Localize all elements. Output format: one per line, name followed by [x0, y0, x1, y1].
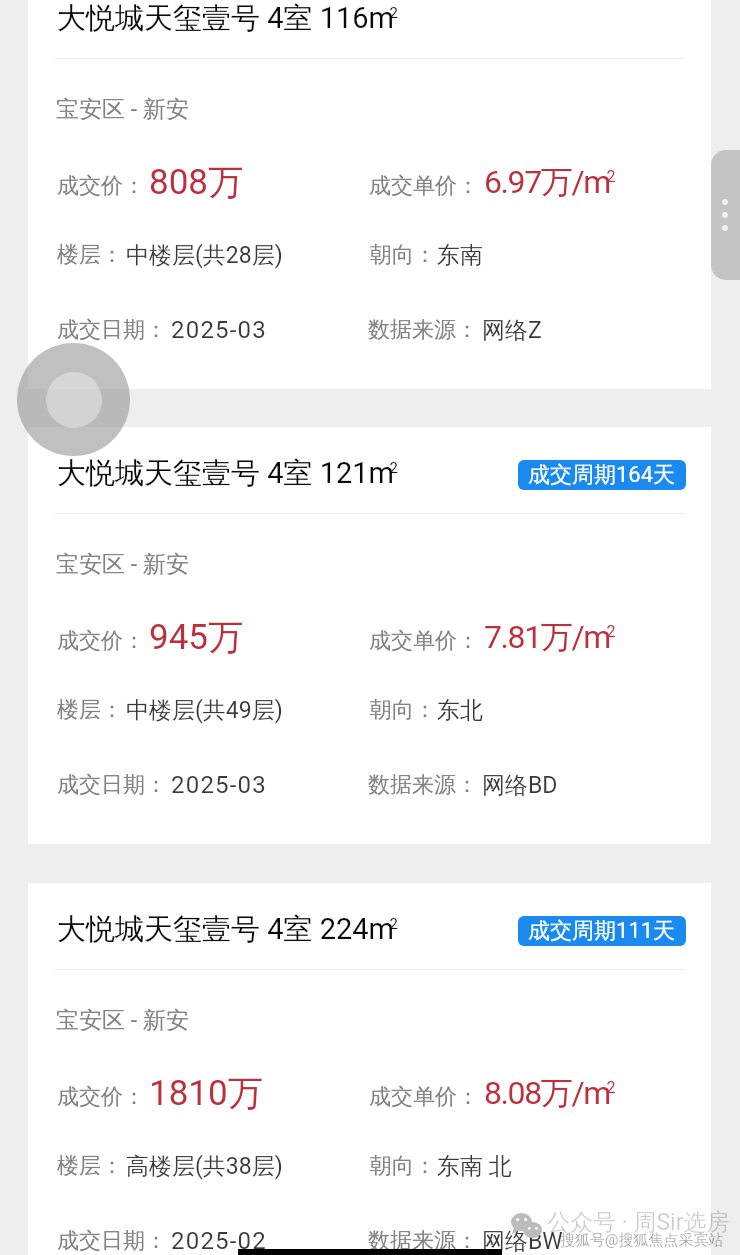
staticText: 成交单价： [369, 172, 479, 200]
staticText: 8.08万/m2 [484, 1073, 615, 1113]
button[interactable]: 大悦城天玺壹号 4室 116m2 [28, 0, 711, 389]
staticText: 中楼层(共49层) [126, 696, 283, 725]
staticText: 1810万 [149, 1071, 263, 1115]
staticText: 成交价： [57, 627, 145, 655]
staticText: 楼层： [57, 696, 123, 724]
staticText: 朝向： [370, 696, 436, 724]
staticText: 楼层： [57, 1152, 123, 1180]
staticText: 宝安区 - 新安 [56, 550, 189, 579]
staticText: 成交周期164天 [528, 461, 676, 489]
staticText: 945万 [149, 615, 244, 659]
staticText: 网络Z [482, 316, 542, 345]
staticText: 大悦城天玺壹号 4室 224m2 [57, 911, 398, 948]
staticText: 东北 [437, 696, 483, 725]
button[interactable]: 成交周期164天 [518, 460, 686, 490]
staticText: 6.97万/m2 [484, 162, 615, 202]
staticText: 朝向： [370, 1152, 436, 1180]
button[interactable]: 大悦城天玺壹号 4室 224m2 [28, 883, 711, 1255]
staticText: 网络BD [482, 771, 558, 800]
staticText: 搜狐号@搜狐焦点采宾站 [560, 1231, 724, 1250]
button[interactable]: 大悦城天玺壹号 4室 121m2 [28, 427, 711, 844]
staticText: 宝安区 - 新安 [56, 1006, 189, 1035]
staticText: 2025-03 [171, 316, 267, 344]
staticText: 朝向： [370, 241, 436, 269]
button[interactable]: More options [711, 150, 740, 280]
staticText: 成交日期： [57, 1227, 167, 1255]
staticText: 宝安区 - 新安 [56, 95, 189, 124]
staticText: 成交日期： [57, 771, 167, 799]
staticText: 808万 [149, 160, 244, 204]
staticText: 数据来源： [368, 316, 478, 344]
staticText: 7.81万/m2 [484, 617, 615, 657]
staticText: 成交单价： [369, 627, 479, 655]
staticText: 成交价： [57, 1083, 145, 1111]
staticText: 公众号 · 周Sir选房 [547, 1208, 730, 1237]
staticText: 2025-03 [171, 771, 267, 799]
staticText: 数据来源： [368, 1227, 478, 1255]
staticText: 大悦城天玺壹号 4室 121m2 [57, 455, 398, 492]
staticText: 成交日期： [57, 316, 167, 344]
staticText: 高楼层(共38层) [126, 1152, 283, 1181]
staticText: 大悦城天玺壹号 4室 116m2 [57, 0, 398, 37]
staticText: 楼层： [57, 241, 123, 269]
staticText: 成交周期111天 [528, 917, 676, 945]
staticText: 数据来源： [368, 771, 478, 799]
button[interactable]: 成交周期111天 [518, 916, 686, 946]
staticText: 2025-02 [171, 1227, 267, 1255]
staticText: 中楼层(共28层) [126, 241, 283, 270]
staticText: 东南 北 [437, 1152, 512, 1181]
staticText: 成交价： [57, 172, 145, 200]
staticText: 网络BW [482, 1227, 563, 1255]
staticText: 成交单价： [369, 1083, 479, 1111]
staticText: 东南 [437, 241, 483, 270]
button[interactable]: Assistive button [17, 343, 130, 456]
